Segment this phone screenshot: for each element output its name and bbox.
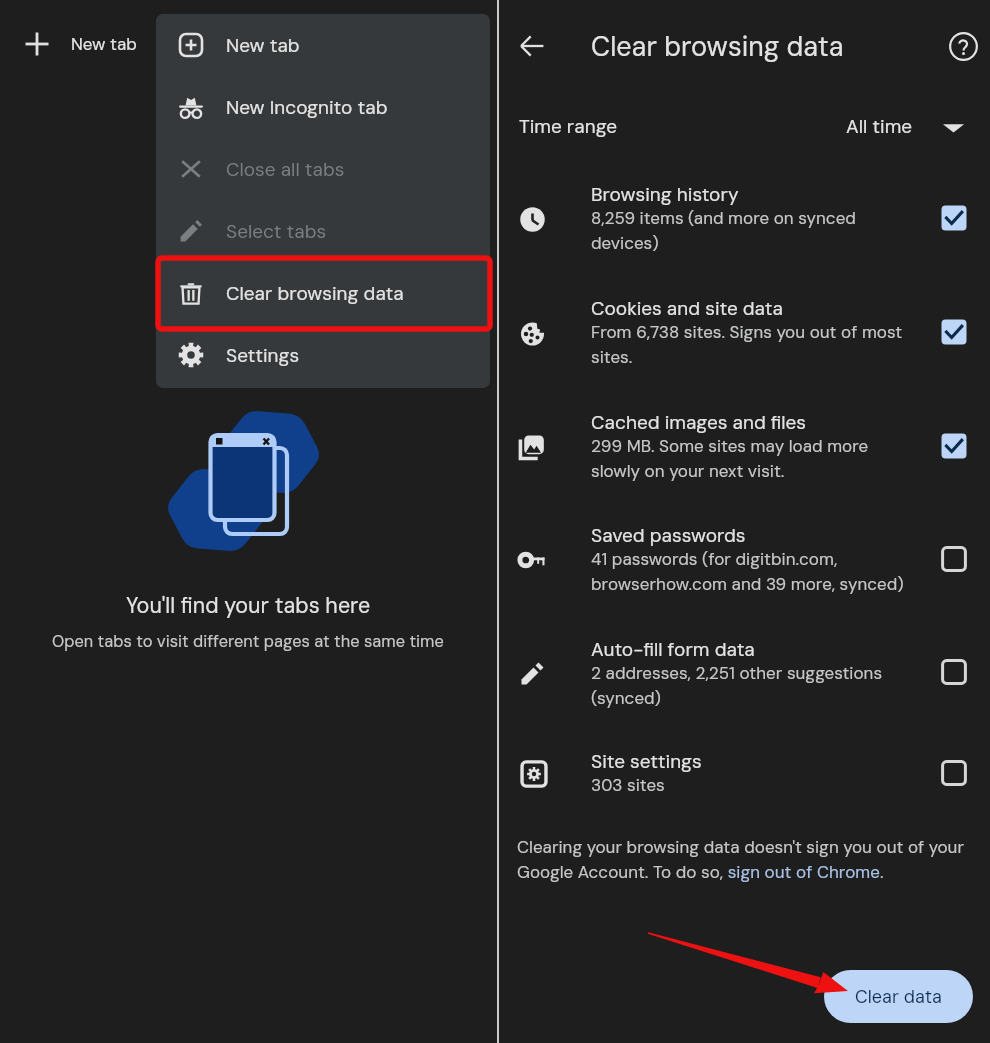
button[interactable]: Settings	[156, 324, 490, 386]
staticText: Time range	[519, 114, 618, 139]
button[interactable]: New tab	[18, 25, 143, 63]
button[interactable]: Browsing history	[938, 202, 970, 234]
staticText: From 6,738 sites. Signs you out of most …	[591, 321, 913, 368]
staticText: 303 sites	[591, 774, 665, 796]
button[interactable]: Saved passwords	[938, 543, 970, 575]
staticText: 41 passwords (for digitbin.com, browserh…	[591, 548, 913, 595]
button[interactable]: Help	[941, 24, 985, 68]
staticText: 8,259 items (and more on synced devices)	[591, 207, 913, 254]
button[interactable]: Cached images and files	[938, 430, 970, 462]
staticText: Auto-fill form data	[591, 637, 755, 662]
staticText: Open tabs to visit different pages at th…	[52, 631, 444, 652]
button[interactable]: Select tabs	[156, 200, 490, 262]
button[interactable]: Close all tabs	[156, 138, 490, 200]
staticText: Clear data	[855, 985, 942, 1008]
staticText: New Incognito tab	[226, 95, 388, 120]
button[interactable]: Clear data	[824, 970, 973, 1023]
button[interactable]: Back	[510, 24, 554, 68]
staticText: Site settings	[591, 749, 702, 774]
button[interactable]: Saved passwords	[498, 501, 990, 597]
staticText: Saved passwords	[591, 523, 746, 548]
button[interactable]: Cookies and site data	[938, 316, 970, 348]
staticText: 299 MB. Some sites may load more slowly …	[591, 435, 913, 482]
staticText: You'll find your tabs here	[126, 592, 371, 620]
staticText: Cookies and site data	[591, 296, 783, 321]
staticText: New tab	[71, 33, 137, 55]
staticText: 2 addresses, 2,251 other suggestions (sy…	[591, 662, 913, 709]
button[interactable]: Browsing history	[498, 160, 990, 256]
button[interactable]: Cached images and files	[498, 388, 990, 484]
staticText: Cached images and files	[591, 410, 807, 435]
button[interactable]: Time range	[498, 103, 990, 149]
staticText: Close all tabs	[226, 157, 345, 182]
staticText: New tab	[226, 33, 300, 58]
button[interactable]: Cookies and site data	[498, 274, 990, 370]
button[interactable]: Site settings	[498, 727, 990, 823]
staticText: All time	[846, 114, 913, 139]
button[interactable]: New Incognito tab	[156, 76, 490, 138]
staticText: Browsing history	[591, 182, 739, 207]
staticText: Select tabs	[226, 219, 327, 244]
staticText: Clear browsing data	[226, 281, 404, 306]
staticText: Settings	[226, 343, 300, 368]
staticText: Clear browsing data	[591, 29, 844, 64]
button[interactable]: Auto-fill form data	[938, 656, 970, 688]
button[interactable]: New tab	[156, 14, 490, 76]
button[interactable]: Auto-fill form data	[498, 615, 990, 711]
button[interactable]: Clear browsing data	[156, 262, 490, 324]
button[interactable]: Site settings	[938, 757, 970, 789]
staticText: Clearing your browsing data doesn't sign…	[517, 836, 977, 883]
